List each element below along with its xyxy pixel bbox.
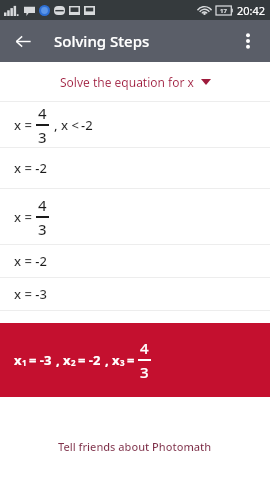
staticText: x <box>63 351 71 369</box>
button[interactable]: x = <box>0 189 270 244</box>
staticText: 3 <box>38 219 47 239</box>
staticText: 3 <box>140 362 149 382</box>
staticText: = -2 <box>78 351 101 369</box>
button[interactable]: Tell friends about Photomath <box>0 433 270 459</box>
staticText: x = -3 <box>14 285 47 303</box>
staticText: Solving Steps <box>54 31 150 51</box>
staticText: Tell friends about Photomath <box>58 439 212 454</box>
staticText: 4 <box>38 103 47 123</box>
staticText: x = <box>14 116 32 134</box>
button[interactable]: x = <box>0 102 270 147</box>
staticText: x = -2 <box>14 252 47 270</box>
staticText: x = -2 <box>14 159 47 177</box>
staticText: 2 <box>71 357 76 368</box>
staticText: = -3 <box>29 351 52 369</box>
button[interactable]: Back <box>4 22 42 60</box>
staticText: 1 <box>22 357 27 368</box>
button[interactable]: More options <box>229 22 267 60</box>
staticText: Solve the equation for x <box>60 74 194 90</box>
button[interactable]: x = -2 <box>0 245 270 277</box>
staticText: 4 <box>38 195 47 215</box>
staticText: x = <box>14 208 32 226</box>
button[interactable]: x = -3 <box>0 278 270 310</box>
staticText: 3 <box>38 127 47 147</box>
staticText: 3 <box>120 357 125 368</box>
button[interactable]: Solve the equation for x <box>0 62 270 101</box>
staticText: = <box>127 351 135 369</box>
staticText: x <box>14 351 22 369</box>
button[interactable]: x = -2 <box>0 148 270 188</box>
button[interactable]: x <box>0 323 270 397</box>
staticText: 17 <box>220 7 227 15</box>
staticText: x <box>112 351 120 369</box>
staticText: , <box>54 116 58 134</box>
staticText: , <box>105 351 109 369</box>
staticText: 4 <box>140 338 149 358</box>
staticText: , <box>56 351 60 369</box>
staticText: 20:42 <box>237 3 266 18</box>
staticText: -2 <box>81 116 93 134</box>
staticText: x < <box>61 116 79 134</box>
